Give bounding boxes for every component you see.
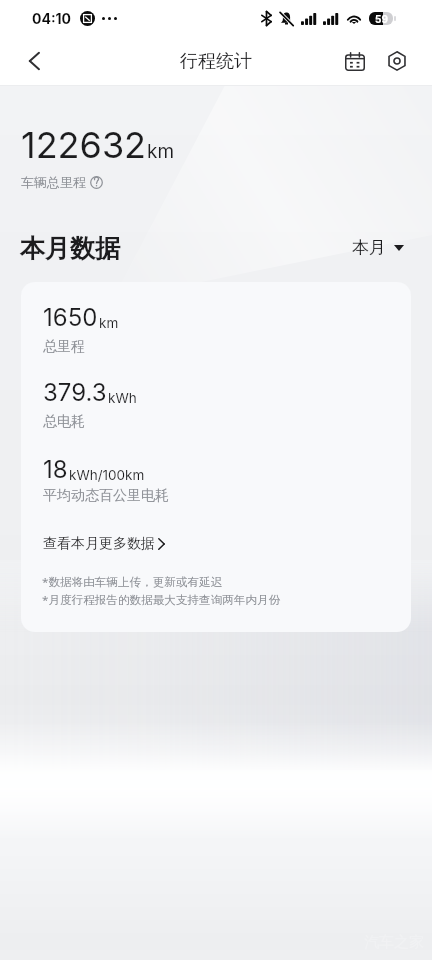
staticText: 查看本月更多数据 bbox=[43, 535, 155, 553]
button[interactable]: 查看本月更多数据 bbox=[43, 535, 165, 553]
staticText: km bbox=[147, 140, 175, 163]
staticText: 本月数据 bbox=[20, 233, 120, 264]
staticText: 本月 bbox=[352, 237, 386, 258]
staticText: 1650 bbox=[43, 303, 98, 332]
staticText: kWh/100km bbox=[69, 467, 145, 483]
staticText: kWh bbox=[108, 390, 137, 406]
staticText: 行程统计 bbox=[180, 50, 252, 73]
button[interactable]: Calendar bbox=[334, 40, 376, 82]
button[interactable]: 本月 bbox=[352, 237, 404, 258]
staticText: 379.3 bbox=[43, 378, 107, 407]
staticText: *月度行程报告的数据最大支持查询两年内月份 bbox=[42, 592, 281, 608]
button[interactable]: Back bbox=[14, 41, 54, 81]
staticText: 18 bbox=[43, 455, 68, 484]
staticText: 总电耗 bbox=[43, 413, 85, 431]
staticText: 车辆总里程 bbox=[21, 174, 86, 190]
button[interactable]: Settings bbox=[376, 40, 418, 82]
staticText: 04:10 bbox=[32, 10, 72, 27]
staticText: 122632 bbox=[21, 123, 147, 167]
staticText: 59 bbox=[375, 13, 388, 25]
staticText: *数据将由车辆上传，更新或有延迟 bbox=[42, 574, 223, 590]
staticText: 平均动态百公里电耗 bbox=[43, 487, 169, 505]
staticText: km bbox=[99, 315, 119, 331]
staticText: 总里程 bbox=[43, 338, 85, 356]
